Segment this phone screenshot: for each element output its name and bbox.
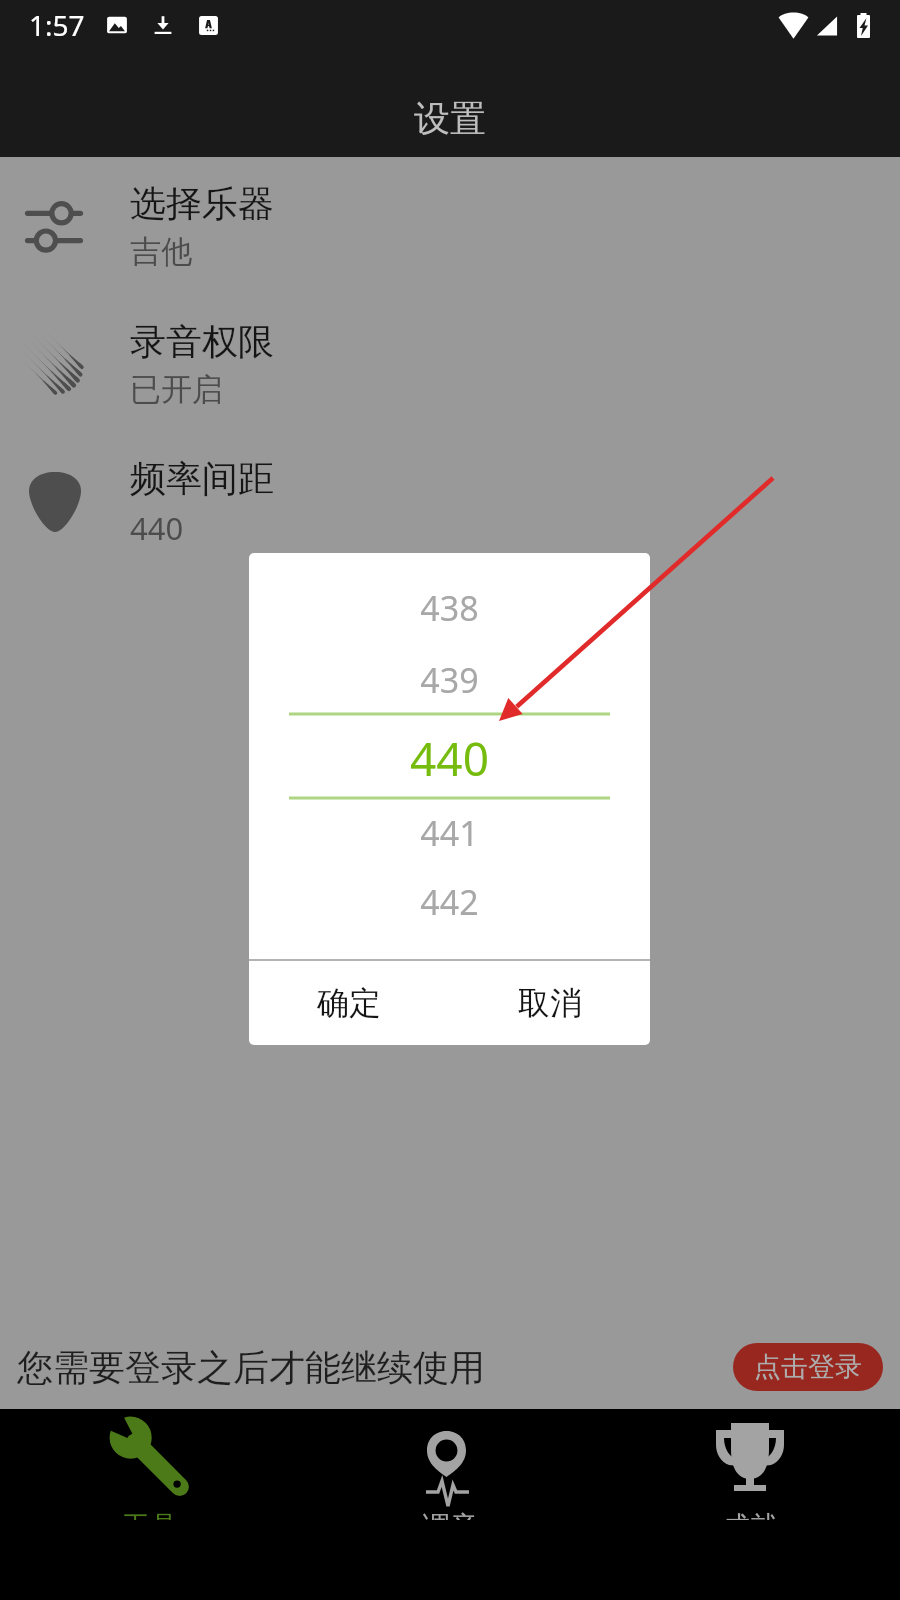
staticText: 取消: [518, 983, 582, 1023]
staticText: 442: [420, 879, 479, 925]
button[interactable]: 438: [249, 578, 650, 638]
button[interactable]: 工具: [0, 1409, 300, 1600]
staticText: 440: [410, 727, 489, 787]
staticText: 成就: [722, 1509, 778, 1520]
staticText: 工具: [122, 1509, 178, 1520]
staticText: 您需要登录之后才能继续使用: [17, 1345, 485, 1390]
staticText: 选择乐器: [130, 181, 274, 226]
button[interactable]: 取消: [449, 961, 650, 1045]
button[interactable]: 439: [249, 650, 650, 710]
staticText: 439: [420, 657, 479, 703]
button[interactable]: 选择乐器: [0, 157, 900, 295]
button[interactable]: 确定: [249, 961, 449, 1045]
button[interactable]: 点击登录: [733, 1343, 883, 1391]
button[interactable]: 440: [249, 727, 650, 787]
staticText: 吉他: [130, 232, 192, 271]
staticText: 设置: [414, 96, 486, 141]
staticText: 已开启: [130, 370, 223, 409]
button[interactable]: 成就: [600, 1409, 900, 1600]
button[interactable]: 调音: [300, 1409, 600, 1600]
button[interactable]: 442: [249, 872, 650, 932]
staticText: 频率间距: [130, 456, 274, 501]
button[interactable]: 441: [249, 803, 650, 863]
staticText: 1:57: [29, 6, 85, 44]
staticText: 441: [420, 810, 479, 856]
staticText: 调音: [422, 1509, 478, 1520]
button[interactable]: 录音权限: [0, 295, 900, 433]
staticText: 440: [130, 507, 184, 549]
staticText: 录音权限: [130, 319, 274, 364]
button[interactable]: 频率间距: [0, 433, 900, 571]
staticText: 确定: [317, 983, 381, 1023]
staticText: 点击登录: [754, 1350, 862, 1384]
staticText: 438: [420, 585, 479, 631]
